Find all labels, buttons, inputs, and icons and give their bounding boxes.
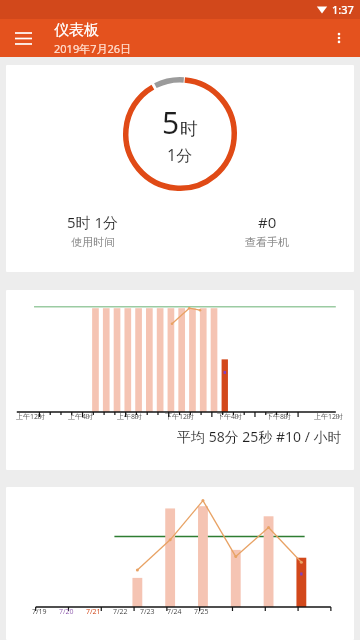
staticText: 下午8时 <box>266 412 292 422</box>
staticText: 查看手机 <box>245 235 289 249</box>
staticText: 2019年7月26日 <box>54 41 132 56</box>
staticText: 1:37 <box>332 2 354 17</box>
staticText: 仪表板 <box>54 21 99 40</box>
button[interactable]: 5时 1分 <box>6 212 180 249</box>
button[interactable]: 7/19 <box>6 487 354 640</box>
staticText: 使用时间 <box>71 235 115 249</box>
staticText: 7/25 <box>194 607 209 617</box>
staticText: 上午12时 <box>16 412 46 422</box>
staticText: 1分 <box>167 144 193 166</box>
button[interactable]: 上午12时 <box>6 290 354 470</box>
staticText: 上午8时 <box>117 412 143 422</box>
staticText: 平均 58分 25秒 #10 / 小时 <box>177 427 342 446</box>
staticText: #0 <box>258 212 277 232</box>
staticText: 5时 1分 <box>67 212 119 232</box>
button[interactable]: More options <box>324 23 354 53</box>
staticText: 7/22 <box>113 607 128 617</box>
button[interactable]: 5 <box>6 65 354 272</box>
button[interactable]: #0 <box>180 212 354 249</box>
staticText: 5 <box>162 102 180 143</box>
staticText: 下午4时 <box>217 412 243 422</box>
staticText: 下午12时 <box>165 412 195 422</box>
staticText: 7/19 <box>32 607 47 617</box>
staticText: 时 <box>180 118 198 141</box>
staticText: 上午4时 <box>68 412 94 422</box>
staticText: 7/23 <box>140 607 155 617</box>
staticText: 上午12时 <box>314 412 344 422</box>
staticText: 7/24 <box>167 607 182 617</box>
staticText: 7/21 <box>86 607 101 617</box>
button[interactable]: Open navigation drawer <box>9 24 37 52</box>
staticText: 7/20 <box>59 607 74 617</box>
